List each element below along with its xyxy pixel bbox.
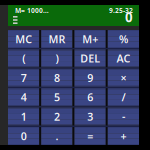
- staticText: ): [55, 51, 58, 65]
- staticText: 9.25-32: [109, 6, 133, 15]
- staticText: 7: [21, 71, 27, 85]
- button[interactable]: 8: [41, 69, 72, 87]
- button[interactable]: MR: [41, 30, 72, 48]
- button[interactable]: 9: [74, 69, 106, 87]
- button[interactable]: ): [41, 49, 72, 67]
- staticText: DEL: [80, 51, 100, 65]
- staticText: -: [122, 109, 125, 124]
- staticText: 4: [21, 90, 27, 104]
- button[interactable]: 1: [8, 108, 39, 126]
- staticText: .: [55, 129, 58, 143]
- button[interactable]: Memory: [12, 15, 18, 25]
- staticText: M+: [82, 32, 98, 46]
- button[interactable]: 5: [41, 88, 72, 106]
- button[interactable]: +: [108, 127, 139, 145]
- staticText: MR: [48, 32, 65, 46]
- button[interactable]: 4: [8, 88, 39, 106]
- staticText: 8: [54, 71, 60, 85]
- button[interactable]: 6: [74, 88, 106, 106]
- staticText: 0: [125, 8, 133, 26]
- button[interactable]: %: [108, 30, 139, 48]
- staticText: 3: [87, 109, 93, 124]
- button[interactable]: MC: [8, 30, 39, 48]
- button[interactable]: 3: [74, 108, 106, 126]
- button[interactable]: M+: [74, 30, 106, 48]
- staticText: =: [87, 129, 93, 143]
- button[interactable]: AC: [108, 49, 139, 67]
- staticText: %: [119, 32, 128, 46]
- staticText: 2: [54, 109, 60, 124]
- staticText: (: [22, 51, 25, 65]
- button[interactable]: =: [74, 127, 106, 145]
- button[interactable]: -: [108, 108, 139, 126]
- staticText: 6: [87, 90, 93, 104]
- staticText: /: [121, 90, 125, 104]
- button[interactable]: ×: [108, 69, 139, 87]
- staticText: 1: [21, 109, 27, 124]
- staticText: 5: [54, 90, 60, 104]
- button[interactable]: /: [108, 88, 139, 106]
- button[interactable]: (: [8, 49, 39, 67]
- button[interactable]: 2: [41, 108, 72, 126]
- staticText: 9: [87, 71, 93, 85]
- button[interactable]: DEL: [74, 49, 106, 67]
- staticText: M= 1000…: [15, 6, 49, 15]
- button[interactable]: 0: [8, 127, 39, 145]
- button[interactable]: 7: [8, 69, 39, 87]
- staticText: AC: [116, 51, 130, 65]
- button[interactable]: .: [41, 127, 72, 145]
- staticText: MC: [15, 32, 32, 46]
- staticText: 0: [21, 129, 27, 143]
- staticText: +: [120, 129, 126, 143]
- staticText: ×: [120, 71, 126, 85]
